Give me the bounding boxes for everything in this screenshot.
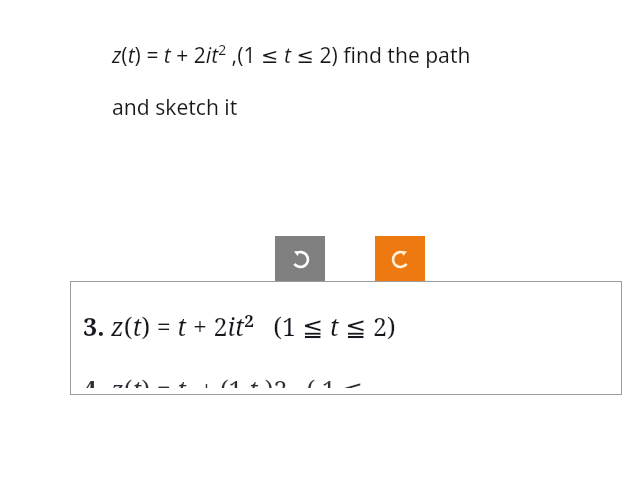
staticText: and sketch it <box>112 93 238 122</box>
button[interactable]: 3. z(t) = t + 2it2 (1 ≦ t ≦ 2) <box>70 281 622 395</box>
button[interactable]: Redo <box>375 236 425 282</box>
staticText: z(t) = t + 2it2 ,(1 ≤ t ≤ 2) find the pa… <box>112 40 471 69</box>
staticText: 4. z(t) = t + (1 t )2, ( 1 ≦ — <box>83 377 395 388</box>
button[interactable]: Undo <box>275 236 325 282</box>
staticText: 3. z(t) = t + 2it2 (1 ≦ t ≦ 2) <box>83 309 396 344</box>
